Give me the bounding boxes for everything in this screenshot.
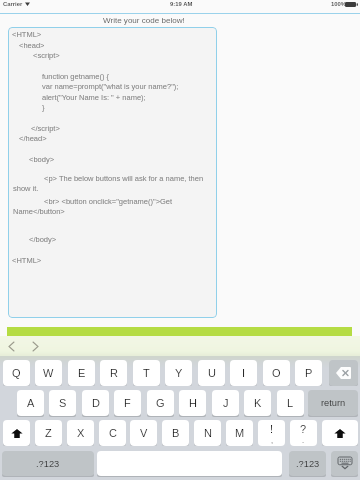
staticText: C <box>109 427 117 439</box>
button[interactable]: G <box>147 390 174 416</box>
button[interactable]: .?123 <box>2 451 94 476</box>
staticText: <script> <box>33 51 60 59</box>
staticText: <HTML> <box>12 256 42 264</box>
staticText: alert("Your Name Is: " + name); <box>42 93 146 101</box>
button[interactable]: O <box>263 360 290 386</box>
button[interactable]: return <box>308 390 358 416</box>
staticText: , <box>271 436 274 444</box>
staticText: D <box>92 397 100 409</box>
staticText: F <box>124 397 131 409</box>
staticText: L <box>287 397 294 409</box>
button[interactable]: .?123 <box>289 451 326 476</box>
staticText: ! <box>270 423 274 435</box>
button[interactable]: W <box>35 360 62 386</box>
staticText: Q <box>12 367 21 379</box>
staticText: show it. <box>13 184 39 192</box>
button[interactable]: X <box>67 420 94 446</box>
staticText: . <box>302 436 305 444</box>
staticText: <br> <button onclick="getname()">Get <box>44 197 173 205</box>
staticText: .?123 <box>296 459 320 469</box>
staticText: K <box>254 397 262 409</box>
staticText: </head> <box>19 134 47 142</box>
staticText: N <box>204 427 212 439</box>
button[interactable] <box>8 27 217 318</box>
staticText: E <box>78 367 86 379</box>
staticText: 100% <box>331 1 347 8</box>
staticText: O <box>272 367 281 379</box>
staticText: U <box>208 367 216 379</box>
button[interactable]: N <box>194 420 221 446</box>
staticText: Carrier <box>3 1 23 8</box>
button[interactable]: E <box>68 360 95 386</box>
button[interactable]: M <box>226 420 253 446</box>
button[interactable]: Next field <box>28 338 42 354</box>
button[interactable]: U <box>198 360 225 386</box>
staticText: <head> <box>19 41 45 49</box>
button[interactable]: Shift <box>322 420 358 446</box>
staticText: B <box>172 427 180 439</box>
staticText: P <box>305 367 313 379</box>
button[interactable]: Previous field <box>4 338 18 354</box>
button[interactable]: Shift <box>3 420 30 446</box>
staticText: function getname() { <box>42 72 110 80</box>
button[interactable]: I <box>230 360 257 386</box>
staticText: G <box>156 397 165 409</box>
button[interactable]: Y <box>165 360 192 386</box>
staticText: Write your code below! <box>103 16 185 25</box>
button[interactable]: ? <box>290 420 317 446</box>
staticText: R <box>110 367 118 379</box>
button[interactable]: Backspace <box>329 360 358 386</box>
staticText: W <box>43 367 54 379</box>
button[interactable]: B <box>162 420 189 446</box>
staticText: var name=prompt("what is your name?"); <box>42 82 179 90</box>
button[interactable]: V <box>130 420 157 446</box>
staticText: I <box>242 367 246 379</box>
button[interactable]: H <box>179 390 206 416</box>
button[interactable]: A <box>17 390 44 416</box>
staticText: </script> <box>31 124 60 132</box>
staticText: A <box>27 397 35 409</box>
button[interactable]: D <box>82 390 109 416</box>
staticText: Name</button> <box>13 207 65 215</box>
staticText: <HTML> <box>12 30 42 38</box>
staticText: S <box>59 397 67 409</box>
staticText: H <box>189 397 197 409</box>
staticText: </body> <box>29 235 57 243</box>
button[interactable]: Hide keyboard <box>331 451 358 476</box>
button[interactable]: C <box>99 420 126 446</box>
staticText: ? <box>300 423 307 435</box>
staticText: return <box>321 398 346 408</box>
staticText: 9:19 AM <box>170 1 193 8</box>
button[interactable]: S <box>49 390 76 416</box>
staticText: .?123 <box>36 459 60 469</box>
button[interactable]: T <box>133 360 160 386</box>
staticText: <body> <box>29 155 55 163</box>
staticText: <p> The below buttons will ask for a nam… <box>44 174 204 182</box>
button[interactable]: L <box>277 390 304 416</box>
button[interactable]: R <box>100 360 127 386</box>
button[interactable]: ! <box>258 420 285 446</box>
staticText: Y <box>175 367 183 379</box>
button[interactable]: Q <box>3 360 30 386</box>
button[interactable]: J <box>212 390 239 416</box>
button[interactable]: P <box>295 360 322 386</box>
button[interactable]: K <box>244 390 271 416</box>
staticText: T <box>143 367 150 379</box>
staticText: Z <box>45 427 52 439</box>
staticText: } <box>42 103 45 111</box>
staticText: M <box>235 427 245 439</box>
staticText: X <box>77 427 85 439</box>
button[interactable]: Z <box>35 420 62 446</box>
button[interactable]: F <box>114 390 141 416</box>
staticText: J <box>223 397 229 409</box>
staticText: V <box>140 427 148 439</box>
